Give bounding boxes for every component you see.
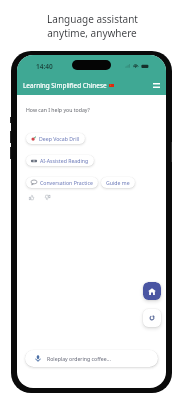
button[interactable]: AI-Assisted Reading xyxy=(26,155,94,166)
staticText: 14:40 xyxy=(36,62,53,71)
button[interactable]: Like xyxy=(26,192,37,203)
staticText: Language assistant xyxy=(47,12,138,26)
staticText: anytime, anywhere xyxy=(47,26,137,40)
staticText: How can I help you today? xyxy=(26,106,90,113)
staticText: Learning Simplified Chinese xyxy=(23,81,107,90)
staticText: Conversation Practice xyxy=(40,179,93,186)
button[interactable]: Refresh xyxy=(143,309,161,327)
staticText: Deep Vocab Drill xyxy=(39,135,80,142)
staticText: Roleplay ordering coffee... xyxy=(47,355,111,362)
button[interactable]: Guide me xyxy=(101,177,135,188)
button[interactable]: Menu xyxy=(150,79,162,91)
button[interactable]: Roleplay ordering coffee... xyxy=(25,350,158,367)
staticText: AI-Assisted Reading xyxy=(40,157,89,164)
staticText: Guide me xyxy=(106,179,130,186)
button[interactable]: Home xyxy=(143,282,161,300)
button[interactable]: Conversation Practice xyxy=(26,177,98,188)
button[interactable]: Dislike xyxy=(42,192,53,203)
button[interactable]: Deep Vocab Drill xyxy=(26,133,85,144)
